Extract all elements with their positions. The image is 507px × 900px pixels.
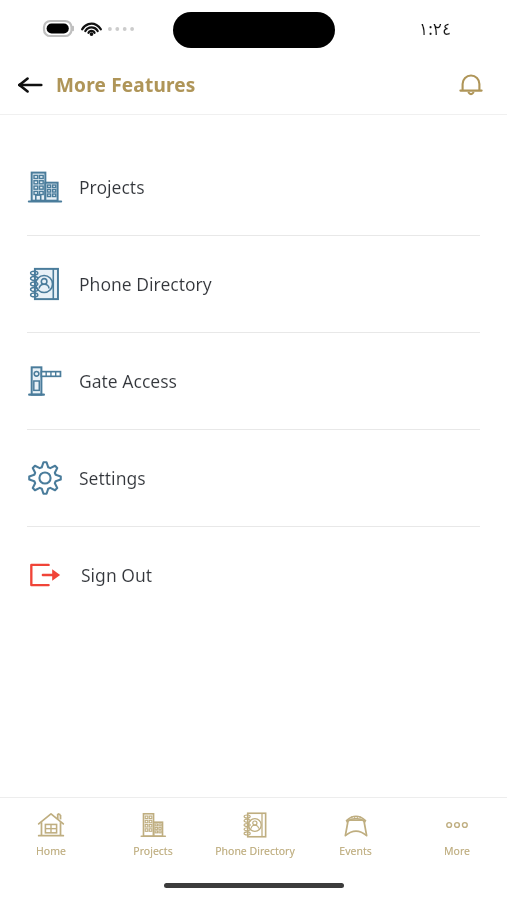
staticText: Projects bbox=[133, 844, 173, 858]
button[interactable]: Phone Directory bbox=[0, 236, 507, 332]
staticText: Home bbox=[36, 844, 66, 858]
button[interactable]: Phone Directory bbox=[204, 798, 305, 870]
staticText: Phone Directory bbox=[215, 844, 295, 858]
button[interactable]: Gate Access bbox=[0, 333, 507, 429]
button[interactable]: Sign Out bbox=[0, 527, 507, 623]
staticText: Events bbox=[339, 844, 372, 858]
button[interactable]: Events bbox=[305, 798, 406, 870]
button[interactable]: Back bbox=[8, 63, 52, 107]
button[interactable]: Projects bbox=[102, 798, 204, 870]
button[interactable]: Settings bbox=[0, 430, 507, 526]
button[interactable]: More bbox=[406, 798, 507, 870]
staticText: More bbox=[444, 844, 470, 858]
staticText: More Features bbox=[56, 72, 196, 98]
staticText: Projects bbox=[79, 175, 145, 199]
staticText: Gate Access bbox=[79, 369, 177, 393]
button[interactable]: Home bbox=[0, 798, 102, 870]
staticText: ١:٢٤ bbox=[419, 17, 452, 40]
staticText: Sign Out bbox=[81, 563, 153, 587]
button[interactable]: Notifications bbox=[449, 63, 493, 107]
staticText: Phone Directory bbox=[79, 272, 212, 296]
button[interactable]: Projects bbox=[0, 139, 507, 235]
staticText: Settings bbox=[79, 466, 146, 490]
